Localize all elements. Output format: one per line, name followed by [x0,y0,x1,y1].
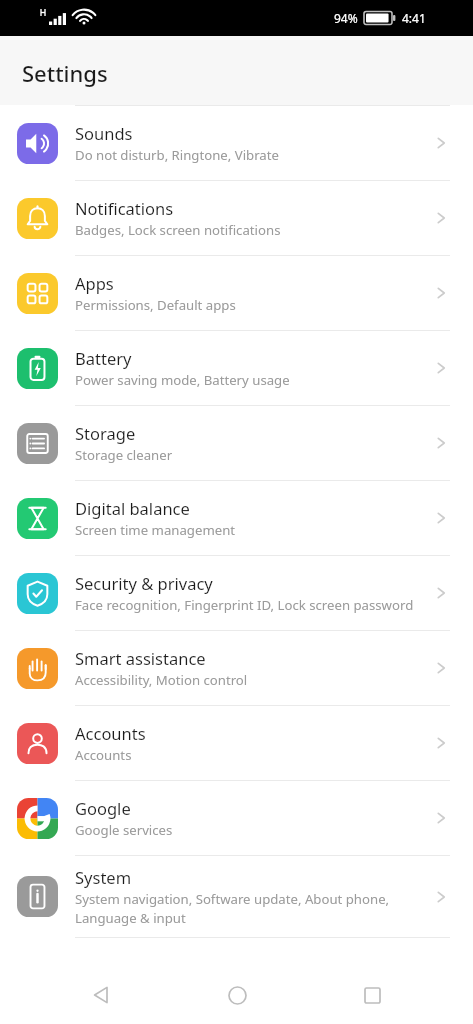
staticText: Accounts [75,722,146,744]
staticText: Digital balance [75,497,190,519]
button[interactable]: Security & privacy [0,556,473,631]
staticText: Storage [75,422,136,444]
button[interactable]: Storage [0,406,473,481]
staticText: Badges, Lock screen notifications [75,221,281,239]
button[interactable]: Sounds [0,106,473,181]
staticText: Security & privacy [75,572,213,594]
button[interactable]: Home [203,966,271,1024]
staticText: Settings [22,58,108,88]
staticText: Permissions, Default apps [75,296,236,314]
button[interactable]: Recents [338,966,406,1024]
staticText: Google [75,797,131,819]
staticText: Sounds [75,122,133,144]
button[interactable]: Notifications [0,181,473,256]
staticText: 94% [334,10,358,26]
button[interactable]: Back [67,966,135,1024]
staticText: System navigation, Software update, Abou… [75,890,424,927]
staticText: Smart assistance [75,647,206,669]
button[interactable]: Smart assistance [0,631,473,706]
staticText: Accessibility, Motion control [75,671,248,689]
staticText: Storage cleaner [75,446,173,464]
staticText: Notifications [75,197,174,219]
staticText: Screen time management [75,521,236,539]
staticText: Do not disturb, Ringtone, Vibrate [75,146,279,164]
button[interactable]: Google [0,781,473,856]
staticText: Face recognition, Fingerprint ID, Lock s… [75,596,414,614]
button[interactable]: Apps [0,256,473,331]
staticText: Google services [75,821,173,839]
staticText: 4:41 [402,10,426,26]
staticText: System [75,866,132,888]
staticText: Battery [75,347,132,369]
staticText: Apps [75,272,114,294]
button[interactable]: Digital balance [0,481,473,556]
staticText: Accounts [75,746,132,764]
staticText: Power saving mode, Battery usage [75,371,290,389]
button[interactable]: Battery [0,331,473,406]
button[interactable]: System [0,856,473,938]
button[interactable]: Accounts [0,706,473,781]
